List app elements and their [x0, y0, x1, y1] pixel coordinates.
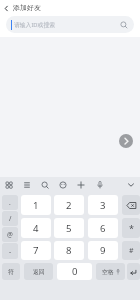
button[interactable]: 空格 [96, 263, 125, 280]
staticText: * [129, 222, 134, 234]
staticText: @ [7, 230, 13, 239]
staticText: 7 [33, 244, 39, 257]
button[interactable]: @ [2, 227, 18, 242]
button[interactable]: / [2, 211, 18, 226]
button[interactable]: 4 [21, 218, 51, 238]
button[interactable] [57, 179, 69, 191]
staticText: 0 [72, 265, 78, 278]
button[interactable]: 7 [21, 241, 51, 260]
staticText: - [9, 247, 12, 256]
staticText: 6 [100, 222, 106, 235]
button[interactable] [75, 179, 87, 191]
staticText: 8 [66, 244, 72, 257]
button[interactable] [21, 179, 33, 191]
button[interactable] [3, 179, 15, 191]
button[interactable]: # [122, 241, 140, 260]
button[interactable]: - [2, 243, 18, 259]
button[interactable]: 8 [54, 241, 84, 260]
staticText: 3 [100, 199, 106, 212]
button[interactable]: 请输入ID或搜索 [6, 16, 134, 33]
button[interactable]: . [2, 195, 18, 210]
staticText: 5 [66, 222, 72, 235]
button[interactable]: 5 [54, 218, 84, 238]
button[interactable] [127, 263, 140, 280]
button[interactable] [39, 179, 51, 191]
button[interactable] [94, 179, 106, 191]
button[interactable] [122, 195, 140, 215]
button[interactable]: 9 [88, 241, 118, 260]
staticText: / [9, 214, 12, 223]
button[interactable] [125, 179, 137, 191]
button[interactable]: 0 [57, 263, 92, 280]
button[interactable]: 1 [21, 195, 51, 215]
button[interactable] [119, 134, 133, 148]
staticText: 符 [8, 268, 14, 276]
button[interactable]: 3 [88, 195, 118, 215]
button[interactable]: 2 [54, 195, 84, 215]
staticText: 1 [33, 199, 39, 212]
staticText: 添加好友 [13, 3, 41, 12]
staticText: 返回 [33, 268, 45, 275]
staticText: 2 [66, 199, 72, 212]
button[interactable]: 6 [88, 218, 118, 238]
button[interactable]: 符 [2, 263, 20, 280]
button[interactable] [2, 4, 11, 13]
staticText: 请输入ID或搜索 [14, 21, 55, 29]
staticText: # [129, 246, 134, 256]
staticText: 4 [33, 222, 39, 235]
button[interactable]: * [122, 218, 140, 238]
staticText: 空格 [102, 268, 114, 275]
button[interactable]: 返回 [24, 263, 53, 280]
staticText: 9 [100, 244, 106, 257]
staticText: . [9, 198, 11, 207]
